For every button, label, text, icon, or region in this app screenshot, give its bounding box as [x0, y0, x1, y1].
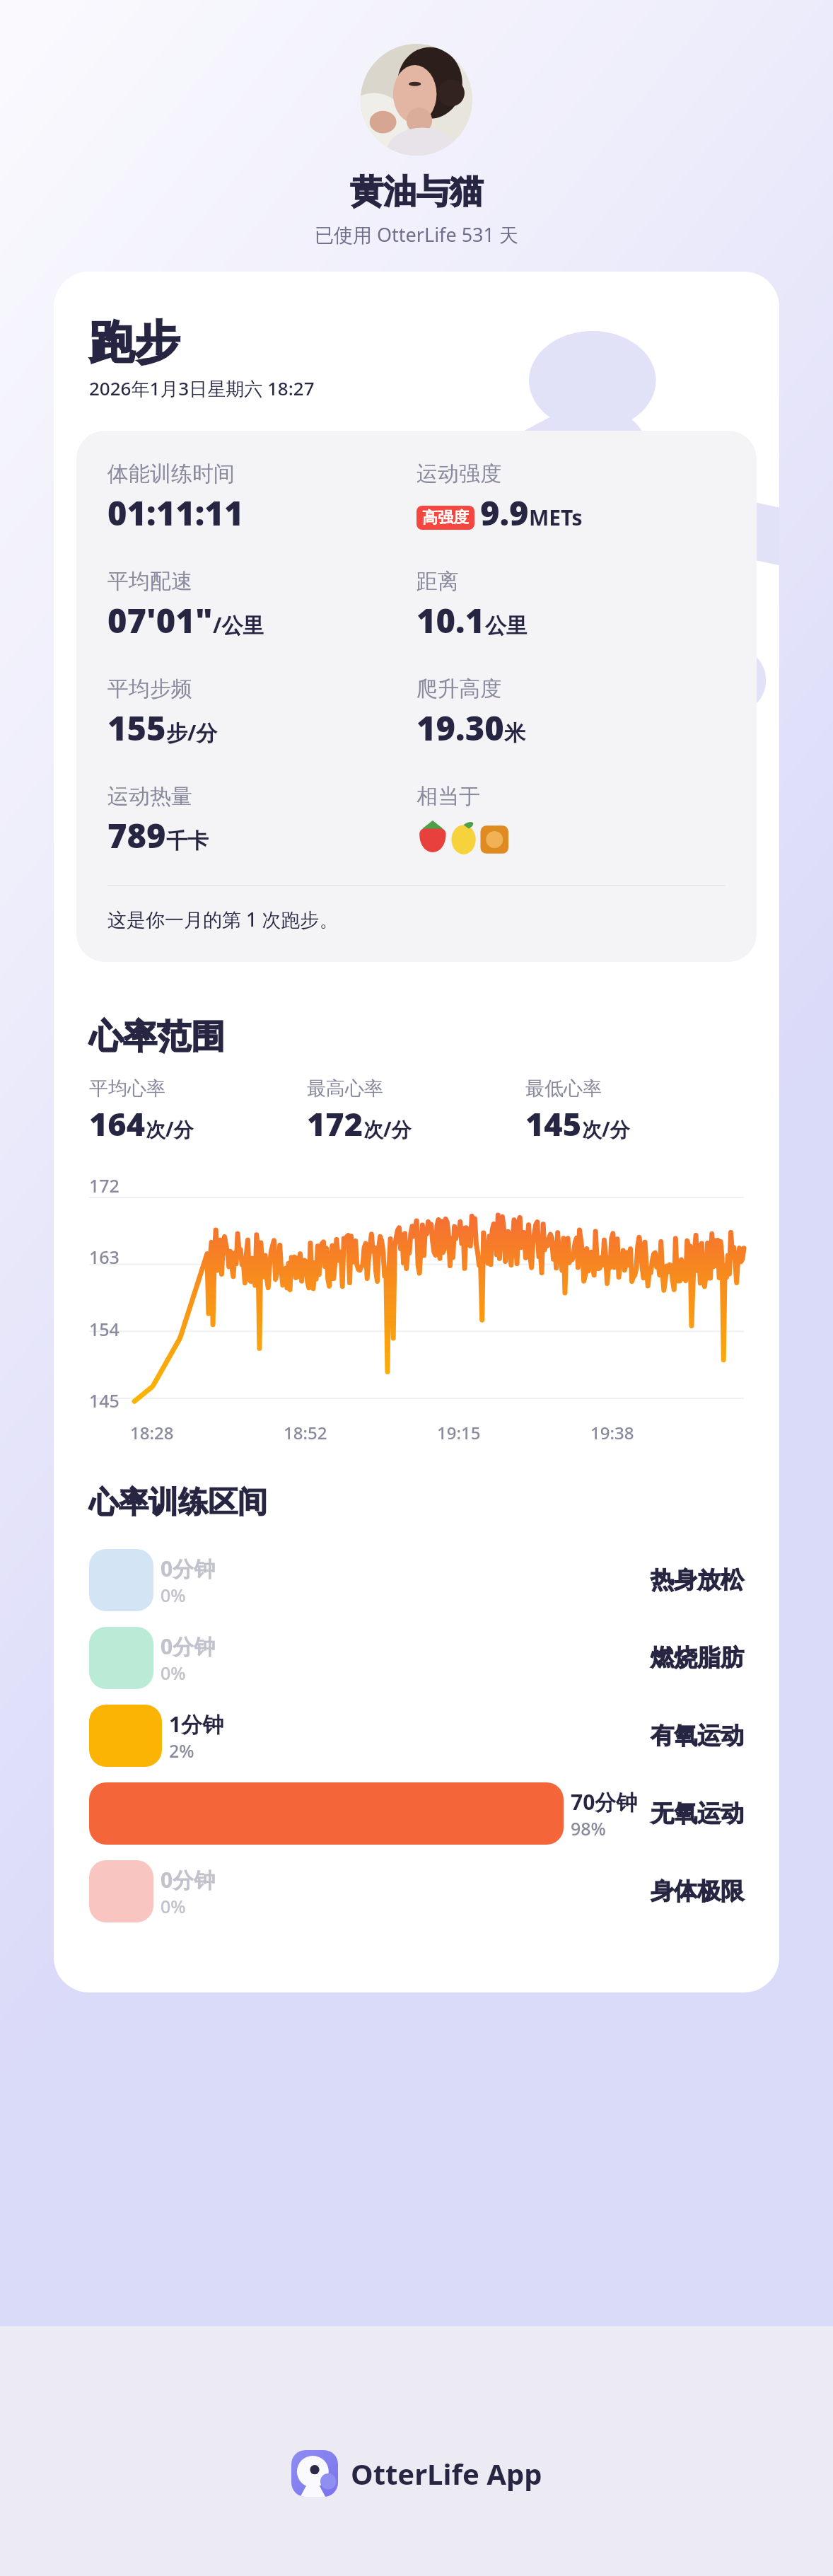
staticText: 155	[107, 705, 166, 750]
staticText: 次/分	[146, 1115, 194, 1142]
staticText: 相当于	[416, 783, 480, 810]
staticText: 2%	[169, 1739, 194, 1763]
staticText: 9.9	[480, 490, 529, 535]
staticText: 07'01"	[107, 598, 213, 643]
staticText: 燃烧脂肪	[651, 1643, 744, 1673]
staticText: 平均配速	[107, 568, 192, 595]
staticText: 18:28	[130, 1421, 174, 1444]
staticText: 0分钟	[161, 1632, 216, 1661]
staticText: 98%	[571, 1816, 606, 1840]
staticText: OtterLife App	[351, 2454, 542, 2493]
staticText: 19:38	[590, 1421, 634, 1444]
staticText: 运动热量	[107, 783, 192, 810]
staticText: 0%	[161, 1894, 186, 1918]
staticText: 次/分	[363, 1115, 412, 1142]
staticText: /公里	[213, 610, 264, 639]
staticText: 172	[307, 1102, 363, 1145]
staticText: 公里	[485, 613, 528, 639]
staticText: 平均步频	[107, 675, 192, 702]
staticText: 最高心率	[307, 1077, 383, 1101]
staticText: 172	[89, 1173, 120, 1197]
staticText: 01:11:11	[107, 490, 244, 535]
staticText: 10.1	[416, 598, 485, 643]
staticText: 已使用 OtterLife 531 天	[315, 221, 518, 248]
staticText: 2026年1月3日星期六 18:27	[89, 376, 315, 401]
staticText: 163	[89, 1245, 120, 1269]
staticText: 心率范围	[89, 1016, 225, 1058]
staticText: 黄油与猫	[350, 171, 483, 213]
button[interactable]: 0分钟	[89, 1619, 744, 1697]
button[interactable]: 0分钟	[89, 1541, 744, 1619]
staticText: 千卡	[166, 828, 209, 854]
staticText: 爬升高度	[416, 675, 501, 702]
other: OtterLife logo	[291, 2450, 338, 2497]
staticText: 次/分	[582, 1115, 630, 1142]
staticText: 无氧运动	[651, 1799, 744, 1828]
button[interactable]: OtterLife logo	[0, 2450, 833, 2497]
staticText: 0分钟	[161, 1865, 216, 1894]
staticText: 步/分	[166, 718, 218, 747]
staticText: 心率训练区间	[89, 1484, 267, 1521]
staticText: 身体极限	[651, 1876, 744, 1906]
staticText: 高强度	[422, 508, 469, 528]
staticText: 这是你一月的第 1 次跑步。	[107, 906, 339, 932]
staticText: 距离	[416, 568, 459, 595]
staticText: 1分钟	[169, 1710, 224, 1739]
button[interactable]: 1分钟	[89, 1697, 744, 1775]
staticText: 0%	[161, 1661, 186, 1685]
staticText: 145	[89, 1388, 120, 1412]
staticText: METs	[529, 503, 583, 532]
staticText: 平均心率	[89, 1077, 165, 1101]
staticText: 有氧运动	[651, 1721, 744, 1751]
staticText: 跑步	[89, 314, 180, 371]
staticText: 米	[504, 720, 525, 747]
button[interactable]: 70分钟	[89, 1775, 744, 1852]
staticText: 18:52	[284, 1421, 327, 1444]
staticText: 154	[89, 1317, 120, 1341]
staticText: 0%	[161, 1583, 186, 1607]
staticText: 164	[89, 1102, 146, 1145]
staticText: 19:15	[437, 1421, 481, 1444]
staticText: 70分钟	[571, 1787, 638, 1816]
staticText: 热身放松	[651, 1565, 744, 1595]
staticText: 最低心率	[525, 1077, 602, 1101]
staticText: 运动强度	[416, 460, 501, 487]
staticText: 19.30	[416, 705, 504, 750]
staticText: 145	[525, 1102, 582, 1145]
button[interactable]: 0分钟	[89, 1852, 744, 1930]
staticText: 体能训练时间	[107, 460, 235, 487]
staticText: 0分钟	[161, 1554, 216, 1583]
button[interactable]: Profile avatar	[361, 44, 472, 156]
staticText: 789	[107, 813, 166, 858]
